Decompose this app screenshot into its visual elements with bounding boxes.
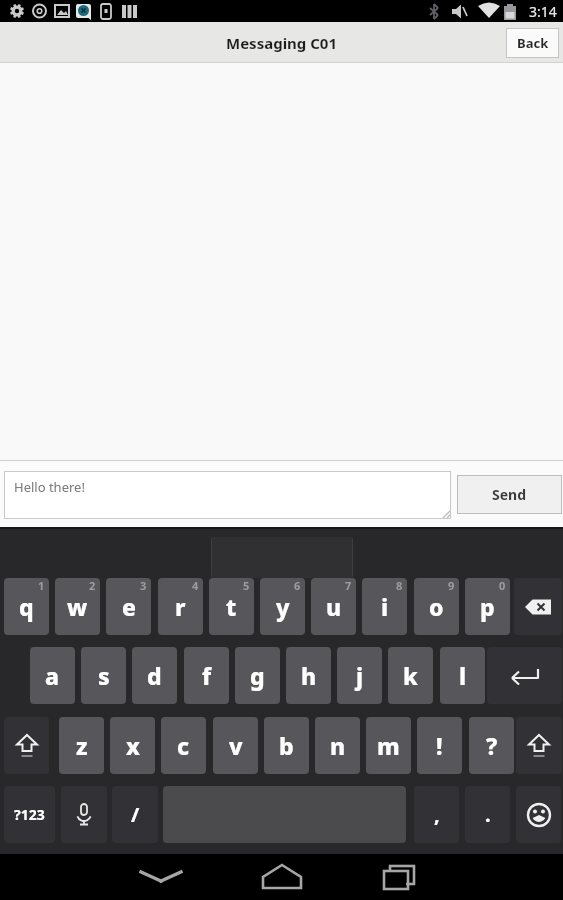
button[interactable] <box>516 717 562 774</box>
button[interactable]: x <box>110 717 155 774</box>
button[interactable]: r <box>158 578 203 635</box>
staticText: Hello there! <box>14 478 85 496</box>
staticText: y <box>276 591 290 622</box>
button[interactable]: p <box>465 578 510 635</box>
staticText: / <box>131 801 140 828</box>
staticText: f <box>202 660 212 691</box>
staticText: p <box>480 591 495 622</box>
staticText: 4 <box>192 578 199 593</box>
staticText: ?123 <box>14 805 45 824</box>
button[interactable] <box>247 854 317 900</box>
button[interactable]: m <box>366 717 411 774</box>
staticText: c <box>177 730 190 761</box>
button[interactable]: a <box>30 647 75 704</box>
button[interactable] <box>516 786 561 843</box>
staticText: j <box>356 660 364 691</box>
button[interactable]: t <box>209 578 254 635</box>
button[interactable] <box>514 578 562 635</box>
staticText: 2 <box>89 578 96 593</box>
staticText: z <box>76 730 88 761</box>
button[interactable]: f <box>184 647 229 704</box>
button[interactable]: ! <box>417 717 462 774</box>
button[interactable] <box>366 854 436 900</box>
button[interactable]: i <box>362 578 407 635</box>
button[interactable]: , <box>414 786 459 843</box>
staticText: n <box>330 730 346 761</box>
staticText: , <box>434 801 440 828</box>
staticText: k <box>403 660 418 691</box>
staticText: b <box>279 730 294 761</box>
staticText: ! <box>436 730 443 761</box>
staticText: 3:14 <box>529 2 557 21</box>
button[interactable]: s <box>81 647 126 704</box>
button[interactable]: . <box>465 786 510 843</box>
staticText: h <box>301 660 317 691</box>
button[interactable]: d <box>132 647 177 704</box>
button[interactable]: o <box>414 578 459 635</box>
button[interactable]: c <box>161 717 206 774</box>
staticText: v <box>229 730 243 761</box>
staticText: u <box>326 591 342 622</box>
staticText: o <box>429 591 444 622</box>
staticText: 9 <box>448 578 455 593</box>
staticText: w <box>67 591 88 622</box>
button[interactable]: Hello there! <box>4 471 451 519</box>
button[interactable] <box>487 647 562 704</box>
button[interactable]: n <box>315 717 360 774</box>
button[interactable]: y <box>260 578 305 635</box>
button[interactable]: k <box>388 647 433 704</box>
button[interactable]: w <box>55 578 100 635</box>
button[interactable]: l <box>440 647 485 704</box>
button[interactable]: h <box>286 647 331 704</box>
staticText: Back <box>517 34 549 52</box>
staticText: i <box>381 591 389 622</box>
button[interactable] <box>61 786 107 843</box>
staticText: e <box>122 591 136 622</box>
staticText: r <box>175 591 186 622</box>
button[interactable]: ?123 <box>4 786 55 843</box>
button[interactable]: j <box>337 647 382 704</box>
button[interactable]: Send <box>457 475 562 514</box>
staticText: 5 <box>243 578 250 593</box>
staticText: 7 <box>345 578 352 593</box>
button[interactable] <box>126 854 196 900</box>
button[interactable]: q <box>4 578 49 635</box>
staticText: 0 <box>499 578 506 593</box>
staticText: 6 <box>294 578 301 593</box>
button[interactable]: b <box>264 717 309 774</box>
staticText: s <box>98 660 110 691</box>
staticText: t <box>226 591 237 622</box>
button[interactable]: / <box>112 786 158 843</box>
button[interactable]: u <box>311 578 356 635</box>
staticText: 3 <box>140 578 147 593</box>
staticText: ? <box>486 730 498 761</box>
staticText: g <box>250 660 265 691</box>
staticText: l <box>459 660 467 691</box>
button[interactable]: ? <box>469 717 514 774</box>
staticText: a <box>45 660 60 691</box>
staticText: . <box>485 801 491 828</box>
staticText: x <box>126 730 140 761</box>
button[interactable]: v <box>213 717 258 774</box>
button[interactable]: e <box>106 578 151 635</box>
button[interactable]: Back <box>506 28 559 58</box>
staticText: q <box>19 591 34 622</box>
staticText: Send <box>492 485 527 504</box>
staticText: 1 <box>38 578 45 593</box>
button[interactable]: g <box>235 647 280 704</box>
button[interactable]: z <box>59 717 104 774</box>
staticText: d <box>147 660 162 691</box>
staticText: Messaging C01 <box>226 33 338 53</box>
staticText: 8 <box>396 578 403 593</box>
button[interactable] <box>4 717 49 774</box>
staticText: m <box>377 730 400 761</box>
